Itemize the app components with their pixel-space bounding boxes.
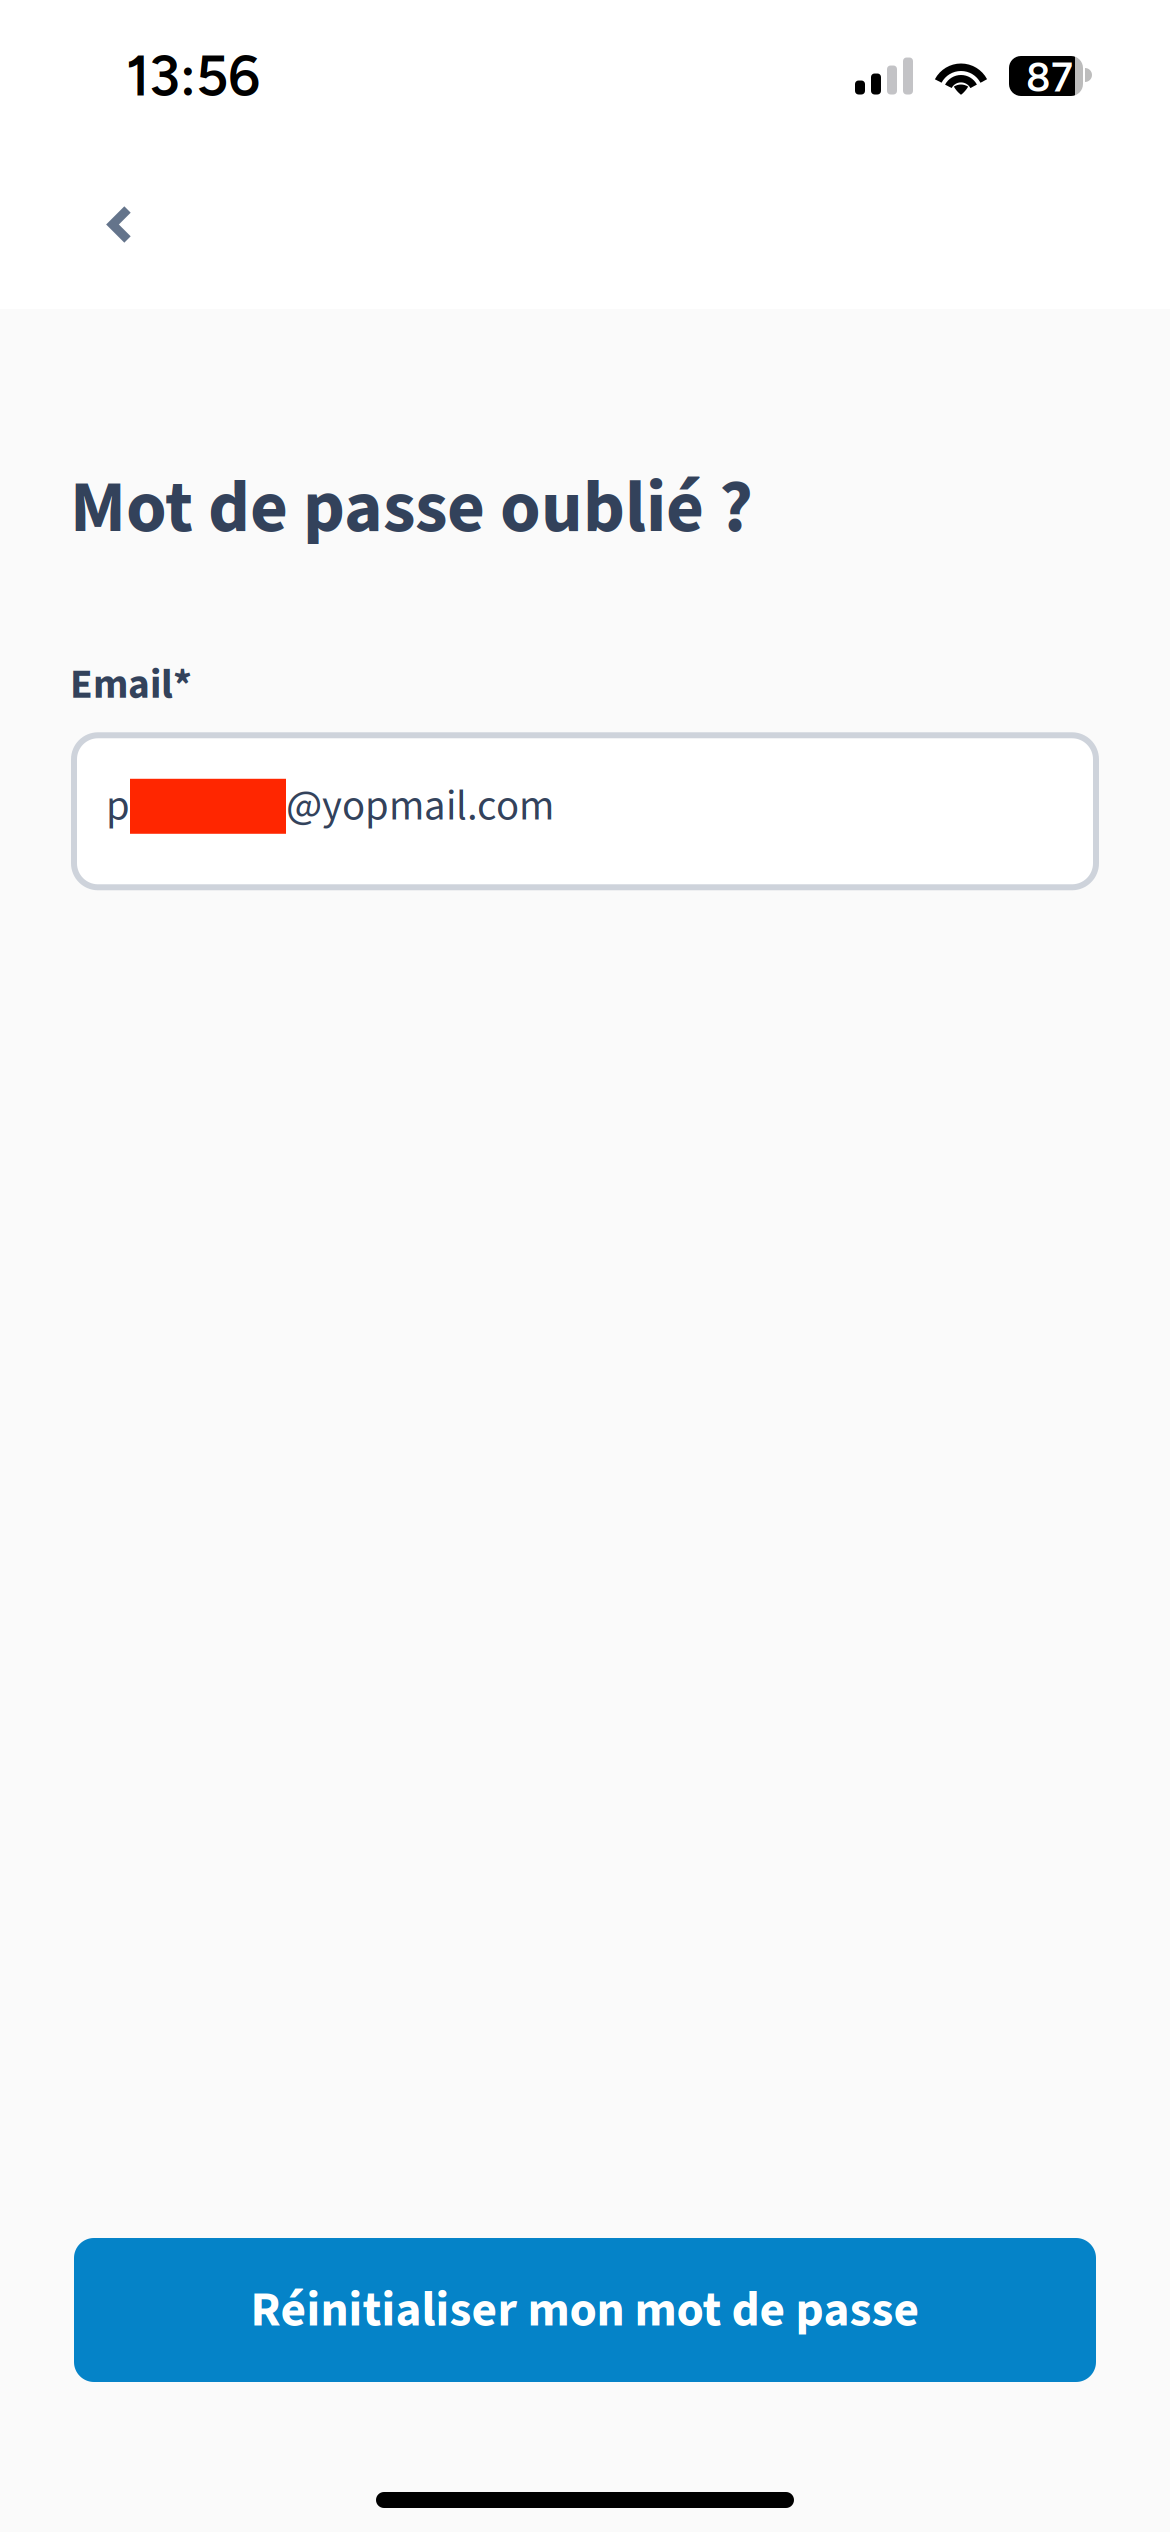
staticText: Mot de passe oublié ? bbox=[70, 456, 753, 560]
button[interactable]: Back bbox=[72, 176, 168, 272]
staticText: 13:56 bbox=[126, 42, 260, 110]
staticText: 87 bbox=[1026, 53, 1073, 101]
staticText: Email* bbox=[70, 655, 192, 714]
staticText: p bbox=[106, 776, 130, 837]
button[interactable]: Réinitialiser mon mot de passe bbox=[74, 2238, 1096, 2382]
staticText: Réinitialiser mon mot de passe bbox=[250, 2275, 919, 2345]
staticText: @yopmail.com bbox=[286, 776, 554, 837]
